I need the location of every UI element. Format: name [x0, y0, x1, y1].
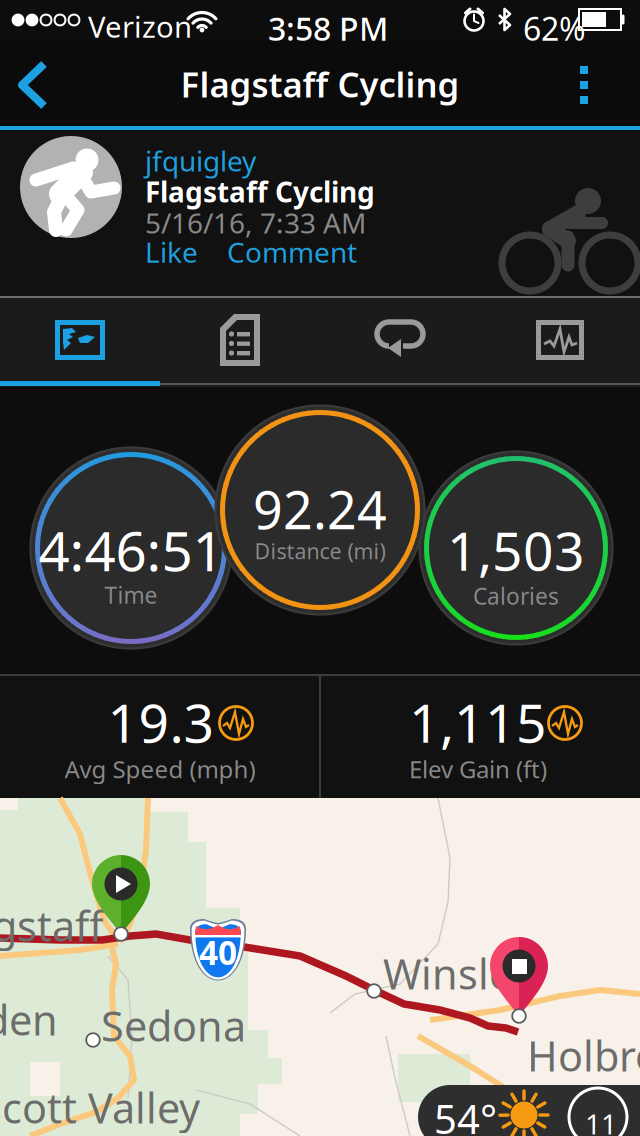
staticText: Winslow: [383, 946, 545, 1001]
staticText: 40: [199, 930, 237, 974]
staticText: 4:46:51: [38, 514, 223, 586]
staticText: 19.3: [107, 687, 214, 757]
staticText: Distance (mi): [254, 537, 385, 565]
staticText: 1,503: [447, 515, 585, 585]
staticText: gstaff: [0, 898, 103, 953]
staticText: 62%: [523, 7, 586, 49]
button[interactable]: Map: [0, 298, 160, 382]
staticText: 1,115: [409, 687, 547, 757]
staticText: Flagstaff Cycling: [180, 61, 459, 107]
staticText: 3:58 PM: [268, 7, 388, 49]
button[interactable]: Back: [0, 44, 80, 126]
button[interactable]: Comment: [227, 231, 357, 265]
staticText: Like: [145, 233, 198, 271]
staticText: Time: [104, 580, 157, 610]
button[interactable]: Charts: [480, 298, 640, 382]
button[interactable]: Like: [145, 231, 209, 265]
button[interactable]: Laps: [320, 298, 480, 382]
staticText: scott Valley: [0, 1080, 200, 1135]
staticText: 92.24: [253, 474, 387, 544]
button[interactable]: Details: [160, 298, 320, 382]
staticText: Holbrook: [527, 1028, 640, 1083]
staticText: Verizon: [88, 7, 192, 46]
staticText: Elev Gain (ft): [409, 753, 547, 785]
staticText: Calories: [473, 581, 559, 611]
staticText: Comment: [227, 233, 357, 271]
staticText: 5/16/16, 7:33 AM: [145, 204, 366, 241]
staticText: Flagstaff Cycling: [145, 173, 375, 210]
staticText: jfquigley: [145, 142, 256, 179]
button[interactable]: More options: [560, 44, 640, 126]
staticText: 54°: [434, 1092, 497, 1136]
staticText: den: [0, 992, 58, 1047]
staticText: Avg Speed (mph): [64, 753, 255, 785]
staticText: 11: [585, 1105, 617, 1136]
staticText: Sedona: [101, 998, 246, 1053]
